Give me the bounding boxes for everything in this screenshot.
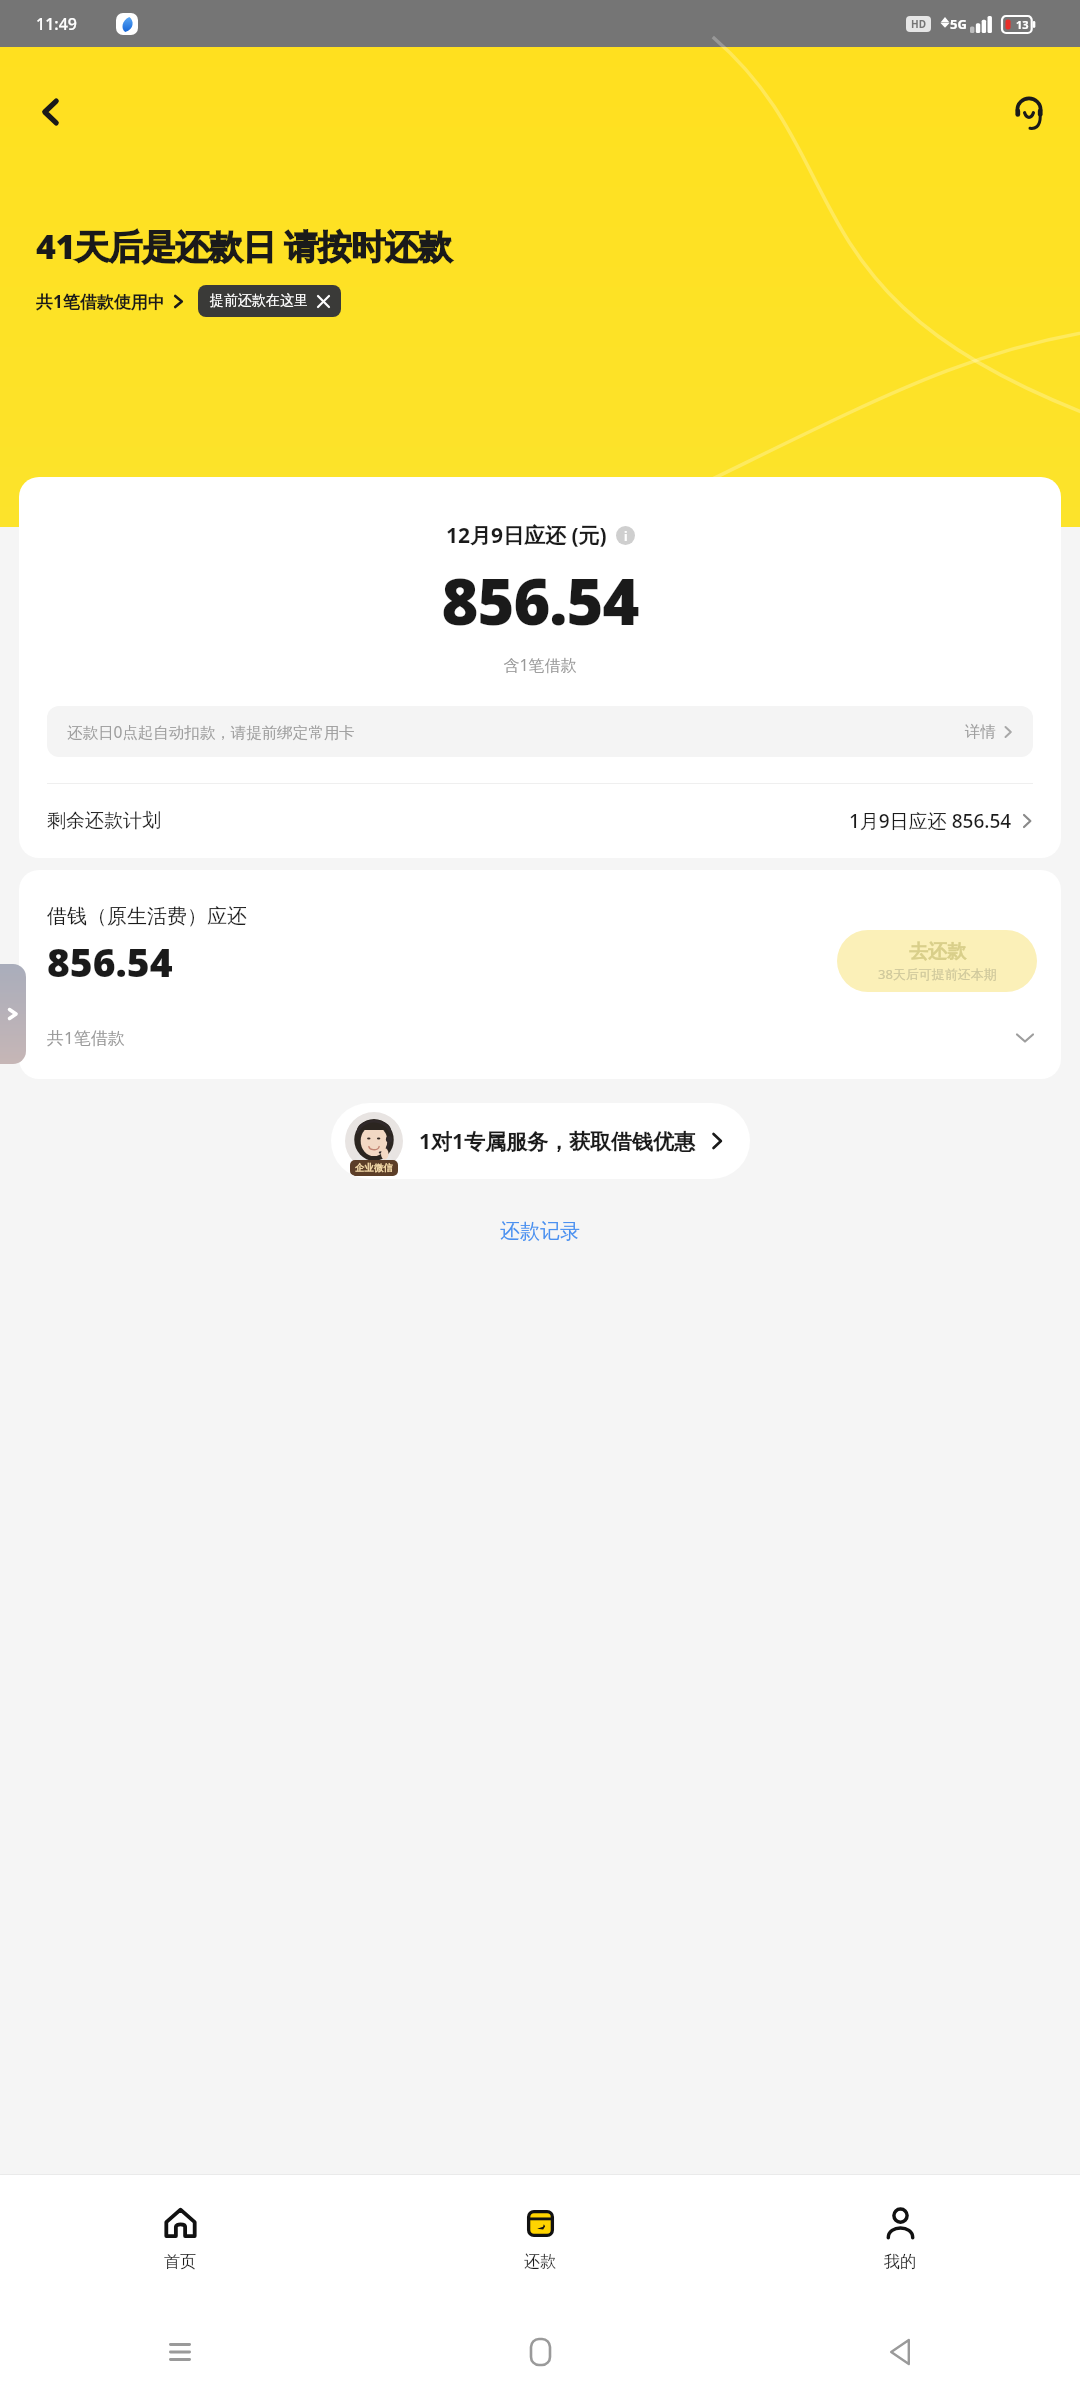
- staticText: 38天后可提前还本期: [878, 965, 997, 983]
- button[interactable]: 去还款: [837, 930, 1037, 992]
- staticText: 11:49: [36, 13, 77, 35]
- staticText: 还款记录: [500, 1219, 580, 1244]
- button[interactable]: 共1笔借款使用中: [36, 290, 184, 313]
- staticText: 共1笔借款: [47, 1026, 125, 1049]
- staticText: 1对1专属服务，获取借钱优惠: [419, 1127, 696, 1156]
- staticText: 首页: [164, 2252, 196, 2272]
- staticText: i: [624, 528, 628, 544]
- button[interactable]: 展开: [0, 964, 26, 1064]
- button[interactable]: 企业微信: [331, 1103, 750, 1179]
- button[interactable]: 首页: [0, 2175, 360, 2304]
- staticText: 1月9日应还 856.54: [849, 808, 1012, 834]
- staticText: 还款: [524, 2252, 556, 2272]
- button[interactable]: 提前还款在这里: [198, 285, 341, 317]
- staticText: 企业微信: [355, 1162, 393, 1174]
- staticText: 共1笔借款使用中: [36, 290, 165, 313]
- staticText: 856.54: [19, 558, 1061, 644]
- button[interactable]: 返回: [24, 85, 78, 139]
- staticText: 含1笔借款: [19, 654, 1061, 676]
- button[interactable]: 说明: [616, 526, 635, 545]
- staticText: 剩余还款计划: [47, 809, 161, 833]
- staticText: 41天后是还款日 请按时还款: [36, 223, 452, 269]
- button[interactable]: 我的: [720, 2175, 1080, 2304]
- button[interactable]: 还款日0点起自动扣款，请提前绑定常用卡: [47, 706, 1033, 757]
- button[interactable]: 返回: [874, 2326, 926, 2378]
- button[interactable]: 还款: [360, 2175, 720, 2304]
- button[interactable]: 客服: [1002, 85, 1056, 139]
- staticText: 提前还款在这里: [210, 292, 308, 310]
- staticText: 5G: [950, 15, 967, 33]
- staticText: 详情: [965, 722, 996, 742]
- staticText: 去还款: [909, 940, 966, 964]
- button[interactable]: 主屏幕: [514, 2326, 566, 2378]
- button[interactable]: 最近任务: [154, 2326, 206, 2378]
- staticText: HD: [911, 17, 926, 31]
- button[interactable]: 共1笔借款: [47, 1026, 1033, 1049]
- staticText: 我的: [884, 2252, 916, 2272]
- staticText: 借钱（原生活费）应还: [47, 904, 247, 929]
- button[interactable]: 剩余还款计划: [19, 784, 1061, 858]
- staticText: 还款日0点起自动扣款，请提前绑定常用卡: [67, 721, 355, 742]
- button[interactable]: 还款记录: [480, 1211, 600, 1252]
- staticText: 12月9日应还 (元): [446, 521, 607, 550]
- staticText: 13: [1016, 17, 1029, 32]
- staticText: 856.54: [47, 935, 173, 988]
